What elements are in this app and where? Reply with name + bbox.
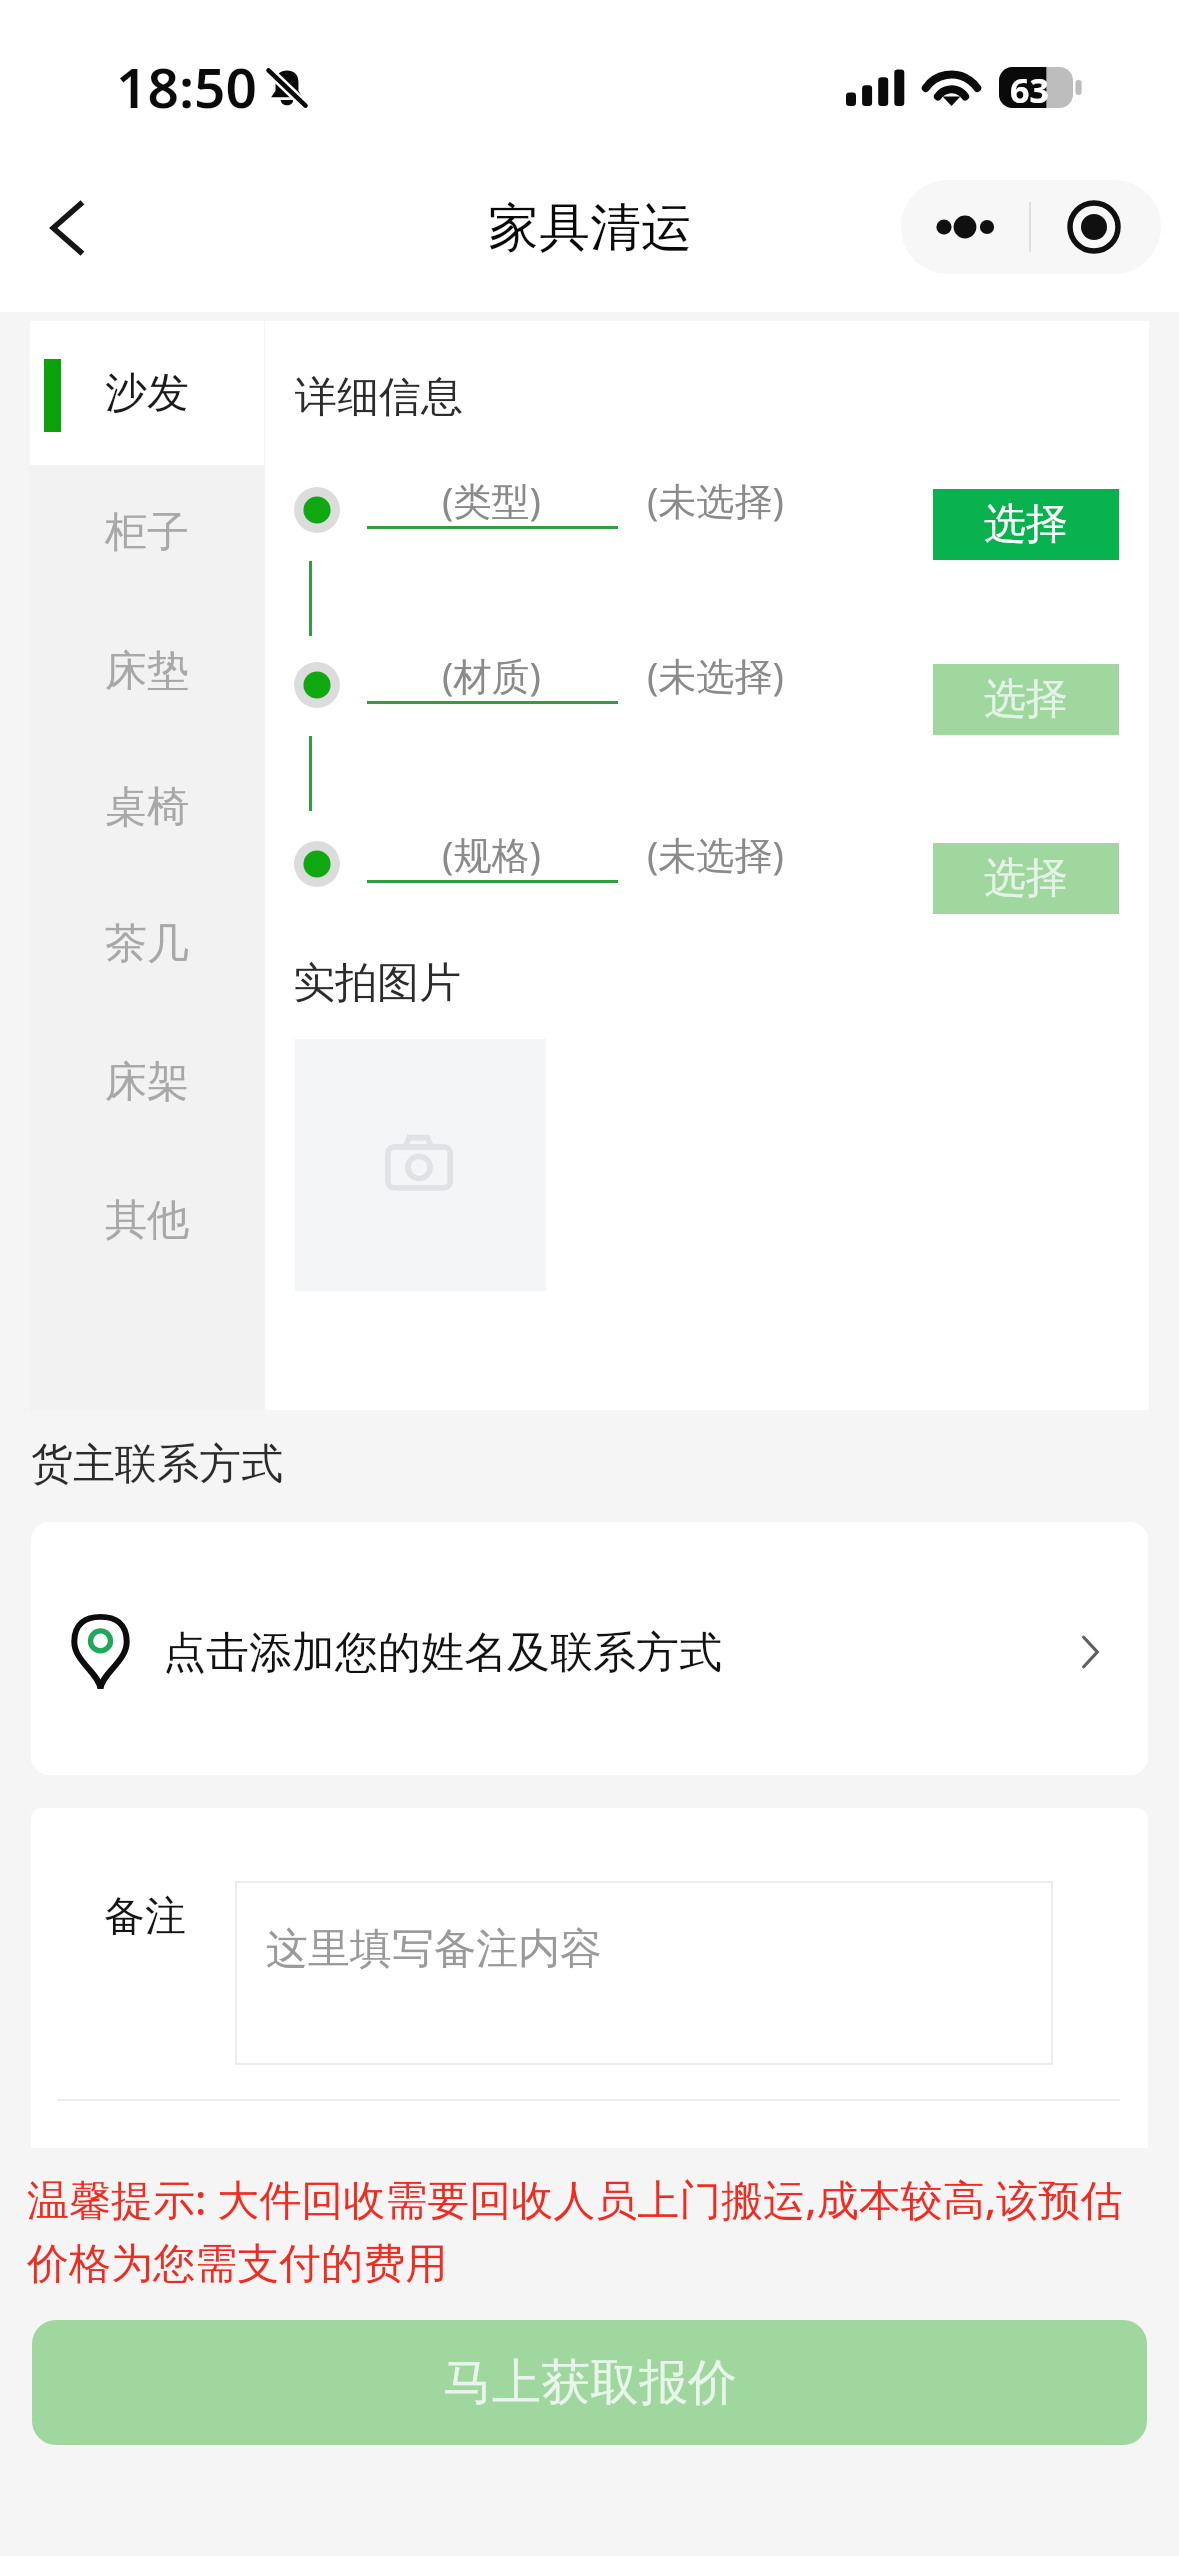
button[interactable]: 沙发: [30, 321, 264, 465]
button[interactable]: 桌椅: [30, 738, 264, 876]
staticText: (未选择): [647, 649, 784, 701]
button[interactable]: 选择: [933, 843, 1119, 914]
staticText: 柜子: [105, 506, 189, 559]
button[interactable]: 床垫: [30, 602, 264, 740]
button[interactable]: 茶几: [30, 875, 264, 1013]
staticText: 茶几: [105, 918, 189, 971]
button[interactable]: 柜子: [30, 463, 264, 601]
staticText: 备注: [104, 1891, 186, 1943]
staticText: (未选择): [647, 474, 784, 526]
staticText: 货主联系方式: [31, 1438, 283, 1491]
button[interactable]: 床架: [30, 1013, 264, 1151]
button[interactable]: 其他: [30, 1151, 264, 1289]
staticText: (材质): [442, 649, 541, 701]
staticText: 选择: [984, 498, 1068, 551]
button[interactable]: Close mini program: [1031, 180, 1161, 274]
staticText: 这里填写备注内容: [266, 1923, 602, 1976]
staticText: 马上获取报价: [443, 2352, 737, 2414]
staticText: 选择: [984, 852, 1068, 905]
button[interactable]: 这里填写备注内容: [236, 1882, 1052, 2064]
button[interactable]: More options: [901, 180, 1030, 274]
staticText: 沙发: [105, 367, 189, 420]
staticText: 详细信息: [295, 371, 463, 424]
staticText: 63: [1010, 67, 1049, 108]
staticText: (未选择): [647, 828, 784, 880]
staticText: (类型): [442, 474, 541, 526]
button[interactable]: 马上获取报价: [32, 2320, 1147, 2445]
staticText: 实拍图片: [293, 957, 461, 1010]
button[interactable]: Back: [11, 173, 121, 283]
button[interactable]: Add photo: [295, 1039, 546, 1291]
button[interactable]: 选择: [933, 664, 1119, 735]
staticText: 桌椅: [105, 781, 189, 834]
staticText: 18:50: [116, 49, 258, 115]
staticText: 家具清运: [488, 196, 692, 260]
staticText: 其他: [105, 1194, 189, 1247]
staticText: 床垫: [105, 645, 189, 698]
staticText: 选择: [984, 673, 1068, 726]
staticText: (规格): [442, 828, 541, 880]
staticText: 床架: [105, 1056, 189, 1109]
staticText: 点击添加您的姓名及联系方式: [163, 1626, 722, 1680]
button[interactable]: 点击添加您的姓名及联系方式: [31, 1522, 1148, 1775]
button[interactable]: 选择: [933, 489, 1119, 560]
staticText: 温馨提示: 大件回收需要回收人员上门搬运,成本较高,该预估价格为您需支付的费用: [27, 2170, 1151, 2291]
